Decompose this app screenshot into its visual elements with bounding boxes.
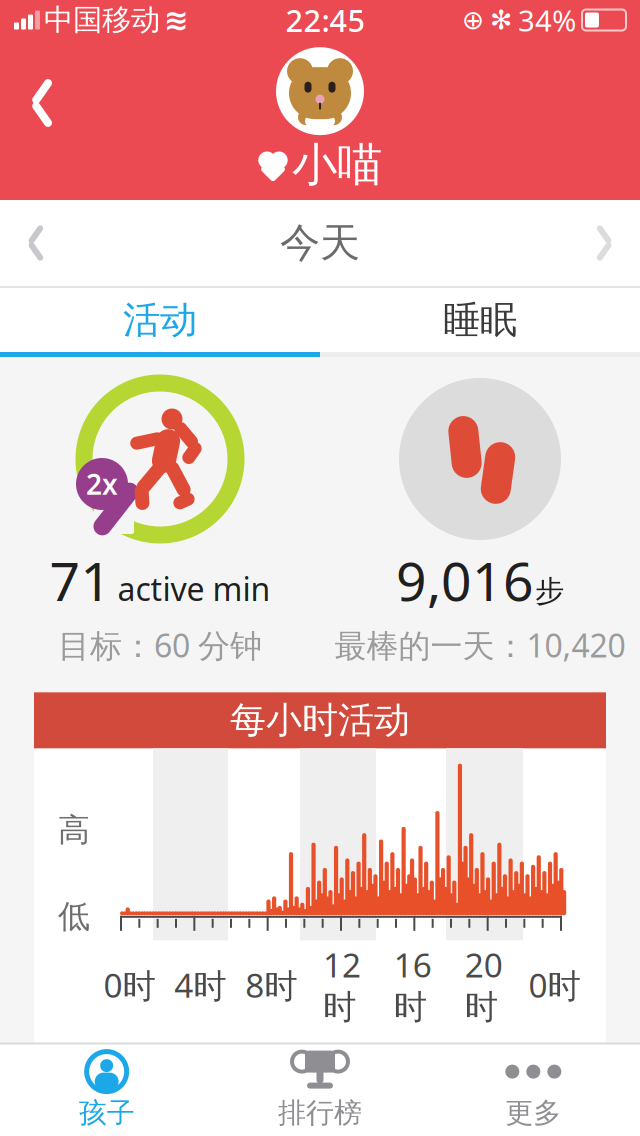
- staticText: 步: [535, 573, 564, 609]
- staticText: 高: [58, 810, 90, 850]
- staticText: 小喵: [292, 137, 382, 193]
- staticText: ✻: [490, 5, 512, 35]
- staticText: 活动: [123, 297, 197, 343]
- staticText: 0时: [529, 963, 581, 1007]
- button[interactable]: 更多: [427, 1045, 640, 1136]
- staticText: 22:45: [285, 0, 365, 40]
- staticText: ≋: [164, 3, 189, 37]
- staticText: 71: [49, 545, 111, 616]
- staticText: 孩子: [79, 1096, 135, 1130]
- staticText: 今天: [280, 218, 360, 267]
- button[interactable]: 排行榜: [213, 1045, 427, 1136]
- button[interactable]: 孩子: [0, 1045, 213, 1136]
- button[interactable]: Next day: [568, 208, 640, 278]
- staticText: 更多: [505, 1096, 561, 1130]
- staticText: 34%: [518, 0, 576, 39]
- staticText: 8时: [245, 963, 297, 1007]
- button[interactable]: 睡眠: [320, 288, 640, 352]
- staticText: 中国移动: [44, 2, 160, 38]
- staticText: active min: [117, 567, 270, 610]
- staticText: 2x: [86, 465, 118, 503]
- staticText: 16时: [394, 942, 432, 1027]
- staticText: 12时: [323, 942, 361, 1027]
- staticText: 低: [58, 897, 90, 936]
- staticText: 每小时活动: [230, 698, 410, 742]
- staticText: 排行榜: [278, 1096, 362, 1130]
- button[interactable]: Back: [0, 66, 84, 140]
- staticText: 睡眠: [443, 297, 517, 343]
- staticText: ⊕: [462, 5, 484, 35]
- staticText: 最棒的一天：10,420: [334, 624, 625, 666]
- staticText: 目标：60 分钟: [58, 624, 262, 666]
- staticText: 0时: [103, 963, 155, 1007]
- staticText: 4时: [174, 963, 226, 1007]
- button[interactable]: Previous day: [0, 208, 72, 278]
- button[interactable]: 活动: [0, 288, 320, 352]
- staticText: 9,016: [396, 545, 534, 616]
- staticText: 20时: [465, 942, 503, 1027]
